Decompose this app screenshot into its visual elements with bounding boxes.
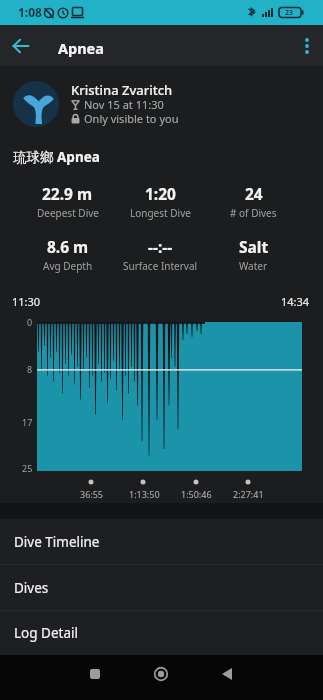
staticText: --:-- bbox=[148, 236, 173, 257]
staticText: 11:30 bbox=[12, 294, 41, 309]
staticText: 8 bbox=[27, 363, 33, 375]
staticText: 琉球鄉 Apnea bbox=[13, 148, 100, 166]
staticText: Longest Dive bbox=[130, 206, 191, 220]
staticText: 8.6 m bbox=[47, 236, 89, 257]
staticText: Water bbox=[239, 259, 268, 273]
button[interactable] bbox=[146, 656, 176, 692]
staticText: Surface Interval bbox=[123, 259, 198, 273]
button[interactable] bbox=[6, 31, 36, 61]
staticText: 1:13:50 bbox=[129, 488, 160, 500]
staticText: 1:08 bbox=[18, 4, 42, 20]
staticText: 2:27:41 bbox=[233, 488, 264, 500]
staticText: # of Dives bbox=[230, 206, 277, 220]
staticText: 0 bbox=[27, 316, 33, 328]
staticText: 17 bbox=[22, 416, 33, 428]
staticText: 1:20 bbox=[145, 183, 176, 204]
staticText: Salt bbox=[239, 236, 269, 257]
button[interactable] bbox=[293, 31, 321, 61]
staticText: 1:50:46 bbox=[181, 488, 212, 500]
button[interactable] bbox=[80, 656, 110, 692]
staticText: Apnea bbox=[58, 38, 104, 58]
staticText: Log Detail bbox=[14, 624, 78, 642]
staticText: 22.9 m bbox=[42, 183, 93, 204]
staticText: Only visible to you bbox=[84, 111, 179, 126]
staticText: Kristina Zvaritch bbox=[71, 81, 173, 99]
staticText: Avg Depth bbox=[43, 259, 93, 273]
staticText: 36:55 bbox=[80, 488, 104, 500]
button[interactable]: Log Detail bbox=[0, 611, 323, 655]
button[interactable] bbox=[212, 656, 242, 692]
button[interactable]: Dive Timeline bbox=[0, 519, 323, 564]
staticText: Dive Timeline bbox=[14, 533, 100, 551]
staticText: 14:34 bbox=[281, 294, 310, 309]
staticText: 24 bbox=[245, 183, 263, 204]
staticText: Nov 15 at 11:30 bbox=[84, 97, 164, 112]
staticText: 25 bbox=[22, 462, 33, 474]
button[interactable]: Dives bbox=[0, 565, 323, 610]
staticText: Dives bbox=[14, 579, 49, 597]
staticText: Deepest Dive bbox=[37, 206, 99, 220]
staticText: 23 bbox=[285, 8, 294, 18]
